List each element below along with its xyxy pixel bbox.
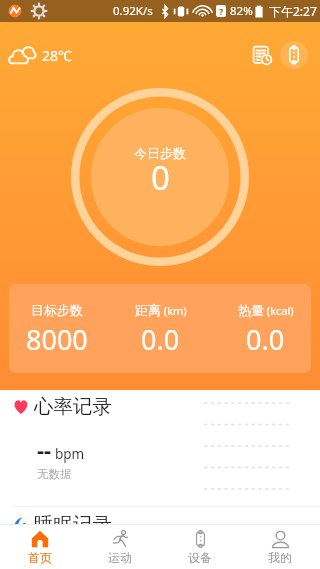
staticText: 今日步数 [134, 145, 186, 161]
staticText: 首页 [28, 550, 52, 565]
staticText: 设备 [188, 550, 212, 565]
staticText: 0.0 [246, 321, 285, 358]
staticText: 28℃ [42, 46, 72, 65]
staticText: 运动 [108, 550, 132, 565]
button[interactable]: 首页 [0, 529, 80, 565]
staticText: 下午2:27 [269, 3, 317, 19]
staticText: bpm [55, 445, 85, 463]
staticText: 0.0 [141, 321, 180, 358]
staticText: 热量 [238, 302, 264, 318]
staticText: 0 [151, 155, 170, 200]
button[interactable]: 目标步数 [9, 284, 311, 373]
button[interactable]: 运动 [80, 529, 160, 565]
button[interactable]: 睡眠记录 [0, 507, 320, 569]
staticText: 心率记录 [34, 394, 112, 419]
button[interactable]: 我的 [240, 529, 320, 565]
staticText: 82% [230, 3, 253, 19]
staticText: ? [219, 5, 224, 17]
staticText: 8000 [26, 321, 88, 358]
button[interactable]: 设备 [160, 529, 240, 565]
staticText: (kcal) [264, 303, 294, 318]
staticText: 我的 [268, 550, 292, 565]
staticText: 无数据 [37, 467, 72, 481]
staticText: 0.92K/s [113, 3, 153, 19]
staticText: -- [37, 434, 52, 464]
button[interactable]: History [245, 38, 279, 72]
staticText: (km) [161, 303, 187, 318]
button[interactable]: 心率记录 [0, 390, 320, 506]
staticText: 距离 [135, 302, 161, 318]
staticText: 睡眠记录 [34, 512, 112, 537]
button[interactable]: My device [280, 41, 308, 69]
staticText: 目标步数 [31, 302, 83, 318]
